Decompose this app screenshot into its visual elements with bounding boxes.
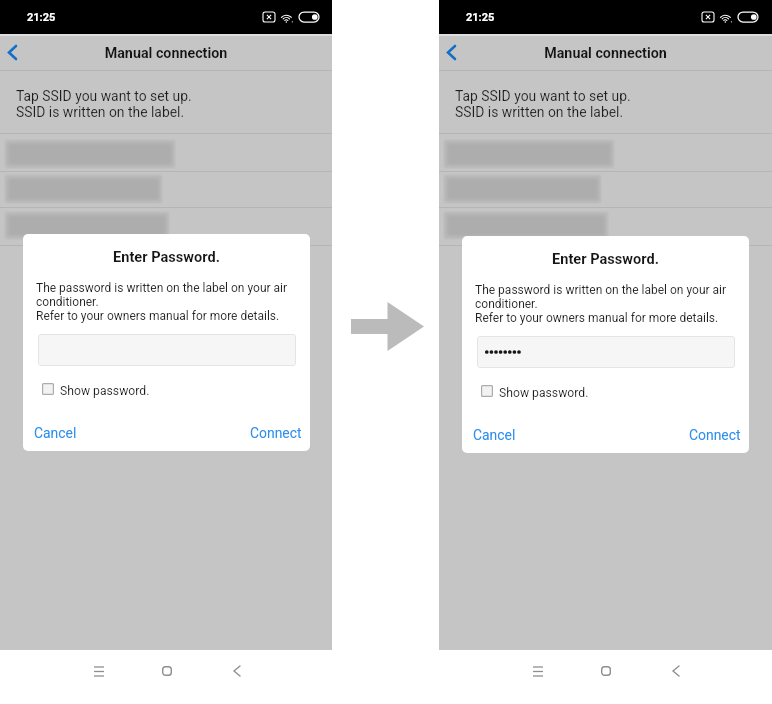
button[interactable]: Home — [591, 656, 621, 686]
staticText: Enter Password. — [23, 248, 310, 265]
button[interactable]: Recent apps — [84, 656, 114, 686]
staticText: 21:25 — [27, 11, 56, 24]
button[interactable]: Connect — [683, 420, 747, 450]
button[interactable]: Password field — [38, 334, 296, 366]
button[interactable] — [439, 208, 772, 245]
staticText: Connect — [250, 425, 302, 441]
staticText: SSID is written on the label. — [455, 104, 624, 120]
button[interactable] — [0, 208, 332, 245]
staticText: Connect — [689, 427, 741, 443]
staticText: Manual connection — [0, 45, 332, 62]
button[interactable]: Password field — [477, 336, 735, 368]
staticText: The password is written on the label on … — [36, 281, 288, 323]
button[interactable]: Navigate up — [0, 36, 25, 69]
button[interactable]: Next step — [351, 302, 424, 351]
button[interactable] — [0, 134, 332, 171]
button[interactable]: Connect — [244, 418, 308, 448]
button[interactable]: Cancel — [467, 420, 522, 450]
button[interactable] — [439, 134, 772, 171]
staticText: 21:25 — [466, 11, 495, 24]
staticText: Cancel — [34, 425, 77, 441]
staticText: Show password. — [499, 386, 589, 400]
staticText: The password is written on the label on … — [475, 283, 727, 325]
staticText: SSID is written on the label. — [16, 104, 185, 120]
button[interactable]: Recent apps — [523, 656, 553, 686]
button[interactable]: Back — [661, 656, 691, 686]
button[interactable]: Show password. — [475, 378, 589, 403]
button[interactable]: Show password. — [36, 376, 150, 401]
staticText: Cancel — [473, 427, 516, 443]
button[interactable]: Cancel — [28, 418, 83, 448]
button[interactable]: Navigate up — [439, 36, 464, 69]
staticText: Tap SSID you want to set up. — [455, 88, 631, 104]
staticText: Enter Password. — [462, 250, 749, 267]
staticText: Tap SSID you want to set up. — [16, 88, 192, 104]
staticText: Manual connection — [439, 45, 772, 62]
button[interactable] — [439, 172, 772, 207]
button[interactable]: Back — [222, 656, 252, 686]
staticText: Show password. — [60, 384, 150, 398]
button[interactable] — [0, 172, 332, 207]
button[interactable]: Home — [152, 656, 182, 686]
